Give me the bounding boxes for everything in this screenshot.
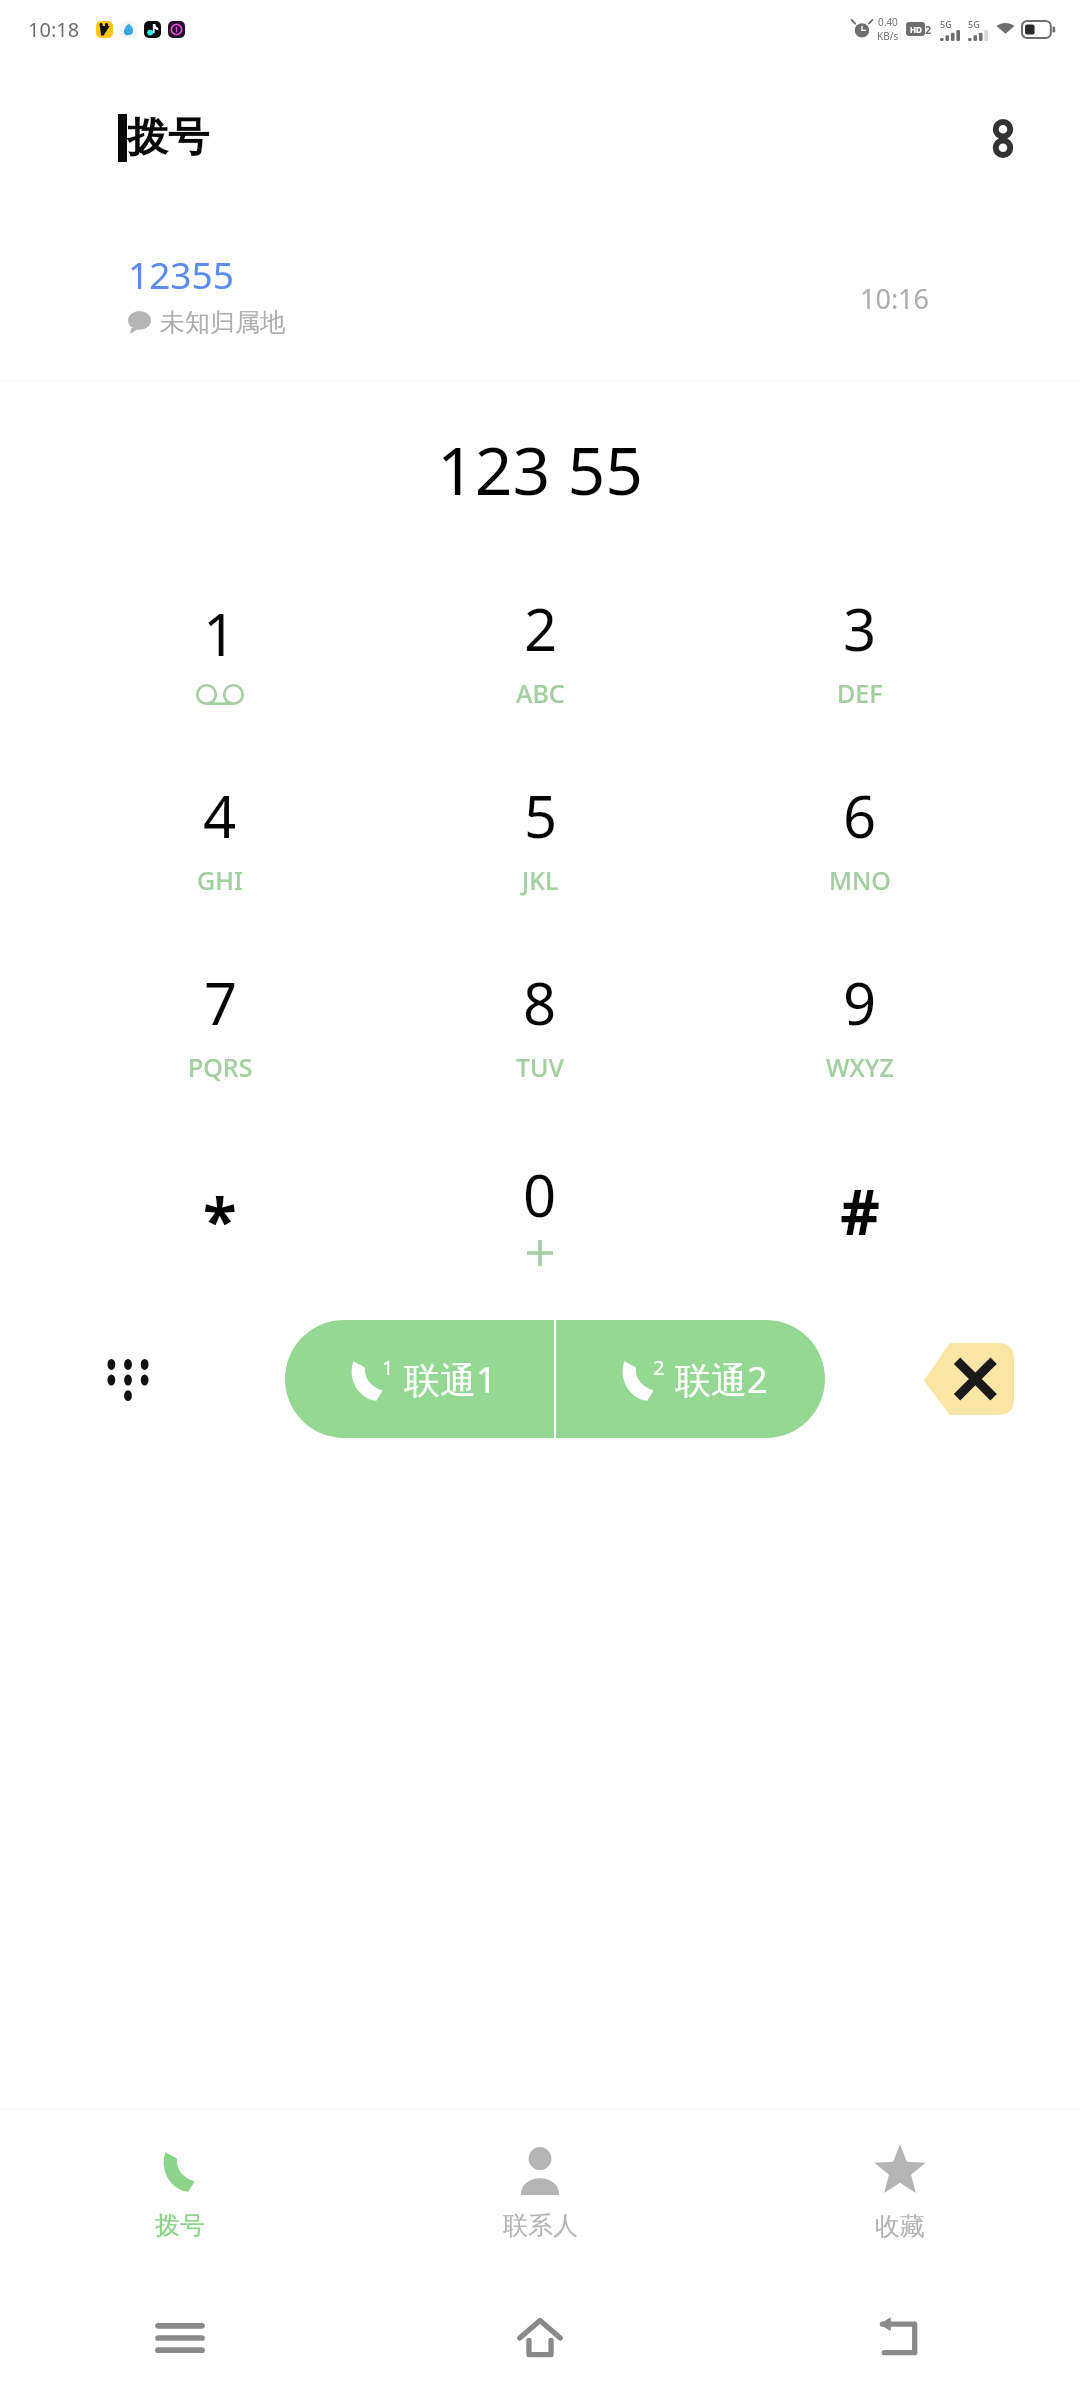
button[interactable]: 2 xyxy=(380,556,700,743)
staticText: 联系人 xyxy=(503,2210,578,2241)
button[interactable]: Recents xyxy=(0,2275,360,2400)
staticText: 12355 xyxy=(128,249,234,299)
button[interactable]: 5 xyxy=(380,743,700,930)
staticText: 拨号 xyxy=(155,2210,205,2241)
staticText: 2 xyxy=(524,589,558,668)
staticText: 联通2 xyxy=(675,1355,768,1404)
staticText: 联通1 xyxy=(404,1355,497,1404)
button[interactable]: 4 xyxy=(60,743,380,930)
button[interactable]: 12355 xyxy=(0,218,1080,368)
button[interactable]: 9 xyxy=(700,930,1020,1117)
button[interactable]: # xyxy=(700,1117,1020,1304)
staticText: 8 xyxy=(523,963,557,1042)
staticText: WXYZ xyxy=(826,1050,894,1084)
staticText: 1 xyxy=(203,594,237,673)
staticText: ABC xyxy=(516,676,565,710)
staticText: * xyxy=(203,1178,237,1262)
staticText: GHI xyxy=(197,863,243,897)
staticText: 9 xyxy=(843,963,877,1042)
staticText: 收藏 xyxy=(875,2211,925,2242)
button[interactable]: 收藏 xyxy=(720,2110,1080,2275)
staticText: MNO xyxy=(829,863,891,897)
staticText: 未知归属地 xyxy=(160,307,285,338)
staticText: # xyxy=(840,1169,881,1253)
staticText: 123 55 xyxy=(437,424,643,514)
staticText: 0.40 xyxy=(878,15,898,29)
staticText: 4 xyxy=(203,776,237,855)
staticText: 6 xyxy=(843,776,877,855)
button[interactable]: Back xyxy=(720,2275,1080,2400)
staticText: 7 xyxy=(204,963,238,1042)
button[interactable]: Keypad options xyxy=(90,1341,166,1417)
staticText: HD xyxy=(910,24,922,35)
staticText: 5G xyxy=(940,18,952,30)
staticText: 拨号 xyxy=(127,112,209,164)
button[interactable]: 6 xyxy=(700,743,1020,930)
staticText: 10:18 xyxy=(28,16,80,43)
button[interactable]: 8 xyxy=(380,930,700,1117)
button[interactable]: * xyxy=(60,1117,380,1304)
button[interactable]: 3 xyxy=(700,556,1020,743)
button[interactable]: 1 xyxy=(285,1320,554,1438)
staticText: 10:16 xyxy=(860,280,930,317)
staticText: JKL xyxy=(522,863,559,897)
button[interactable]: Home xyxy=(360,2275,720,2400)
staticText: 2 xyxy=(925,22,932,37)
button[interactable]: More options xyxy=(968,103,1038,173)
button[interactable]: 联系人 xyxy=(360,2110,720,2275)
staticText: 5G xyxy=(968,18,980,30)
button[interactable]: 1 xyxy=(60,556,380,743)
button[interactable]: 2 xyxy=(556,1320,825,1438)
button[interactable]: Delete xyxy=(922,1343,1014,1415)
staticText: 0 xyxy=(523,1155,557,1234)
button[interactable]: 拨号 xyxy=(0,2110,360,2275)
button[interactable]: 7 xyxy=(60,930,380,1117)
staticText: 2 xyxy=(653,1354,665,1381)
staticText: 1 xyxy=(382,1354,394,1381)
button[interactable]: 0 xyxy=(380,1117,700,1304)
staticText: KB/s xyxy=(877,29,899,43)
staticText: 5 xyxy=(524,776,558,855)
staticText: TUV xyxy=(516,1050,564,1084)
staticText: DEF xyxy=(837,676,883,710)
staticText: PQRS xyxy=(188,1050,253,1084)
staticText: 3 xyxy=(843,589,877,668)
